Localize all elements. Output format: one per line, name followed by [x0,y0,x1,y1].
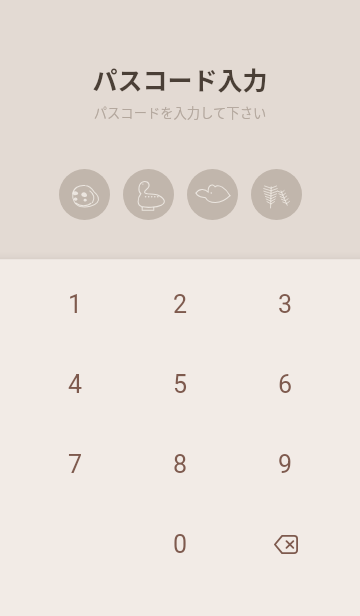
staticText: 3 [278,290,293,319]
other: Icon 3 [196,178,230,212]
button[interactable]: 3 [233,264,338,344]
button[interactable]: Icon 2 [123,169,174,220]
button[interactable]: 9 [233,424,338,504]
staticText: パスコードを入力して下さい [0,103,360,122]
other: Backspace [274,535,298,554]
staticText: 6 [278,370,293,399]
button[interactable]: 7 [22,424,128,504]
button[interactable]: Icon 4 [251,169,302,220]
button[interactable]: Icon 1 [59,169,110,220]
other: Icon 1 [68,178,102,212]
button[interactable]: 6 [233,344,338,424]
button[interactable]: 5 [128,344,233,424]
staticText: 4 [68,370,83,399]
button[interactable]: 0 [128,504,233,584]
button[interactable]: 2 [128,264,233,344]
staticText: 9 [278,450,293,479]
staticText: 5 [173,370,188,399]
button[interactable]: 4 [22,344,128,424]
button[interactable]: Icon 3 [187,169,238,220]
button[interactable]: 1 [22,264,128,344]
staticText: 7 [68,450,83,479]
staticText: 8 [173,450,188,479]
staticText: パスコード入力 [0,61,360,97]
other: Icon 4 [260,178,294,212]
staticText: 2 [173,290,188,319]
staticText: 0 [173,530,188,559]
other: Icon 2 [132,178,166,212]
button[interactable]: Backspace [233,504,338,584]
staticText: 1 [68,290,83,319]
button[interactable]: 8 [128,424,233,504]
